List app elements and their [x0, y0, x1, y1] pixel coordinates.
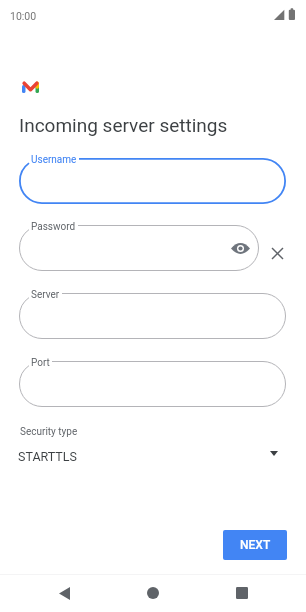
button[interactable]: Username [19, 158, 286, 204]
button[interactable]: Server [19, 293, 286, 339]
staticText: NEXT [240, 538, 271, 552]
staticText: Password [31, 221, 76, 233]
button[interactable]: Show password [228, 236, 252, 260]
button[interactable]: Security type [0, 422, 306, 474]
staticText: 10:00 [10, 10, 37, 22]
staticText: Port [31, 357, 50, 369]
button[interactable]: Password [19, 225, 259, 271]
button[interactable]: NEXT [223, 530, 287, 560]
button[interactable]: Back [48, 577, 80, 609]
staticText: Username [31, 154, 77, 166]
button[interactable]: Clear [265, 241, 290, 266]
staticText: Incoming server settings [19, 114, 228, 136]
button[interactable]: Home [137, 577, 169, 609]
staticText: Security type [20, 426, 78, 438]
button[interactable]: Recents [226, 577, 258, 609]
staticText: Server [31, 289, 60, 301]
staticText: STARTTLS [18, 449, 77, 464]
button[interactable]: Port [19, 361, 286, 407]
